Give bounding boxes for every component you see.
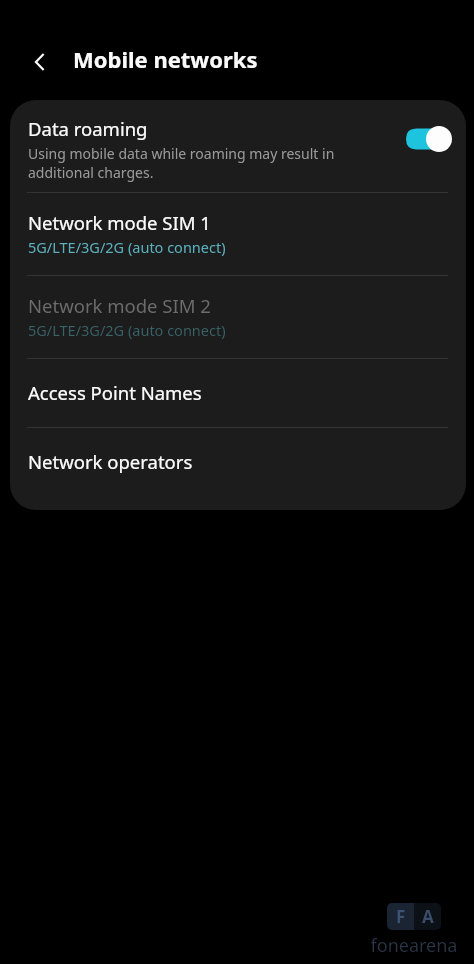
staticText: Network operators	[28, 449, 193, 474]
button[interactable]: Access Point Names	[10, 359, 466, 427]
staticText: A	[422, 905, 434, 928]
button[interactable]: Network mode SIM 1	[10, 193, 466, 275]
button[interactable]: Data roaming toggle	[406, 126, 452, 152]
button: Network mode SIM 2	[10, 276, 466, 358]
staticText: Using mobile data while roaming may resu…	[28, 144, 400, 182]
staticText: 5G/LTE/3G/2G (auto connect)	[28, 320, 226, 340]
staticText: F	[396, 905, 406, 928]
staticText: Access Point Names	[28, 380, 202, 405]
staticText: 5G/LTE/3G/2G (auto connect)	[28, 237, 226, 257]
staticText: fonearena	[362, 933, 466, 958]
staticText: Mobile networks	[73, 44, 258, 74]
staticText: Network mode SIM 1	[28, 210, 211, 235]
button[interactable]: Network operators	[10, 428, 466, 496]
staticText: Network mode SIM 2	[28, 293, 211, 318]
button[interactable]: Back	[18, 40, 62, 84]
button[interactable]: Data roaming	[10, 108, 466, 192]
staticText: Data roaming	[28, 116, 148, 141]
